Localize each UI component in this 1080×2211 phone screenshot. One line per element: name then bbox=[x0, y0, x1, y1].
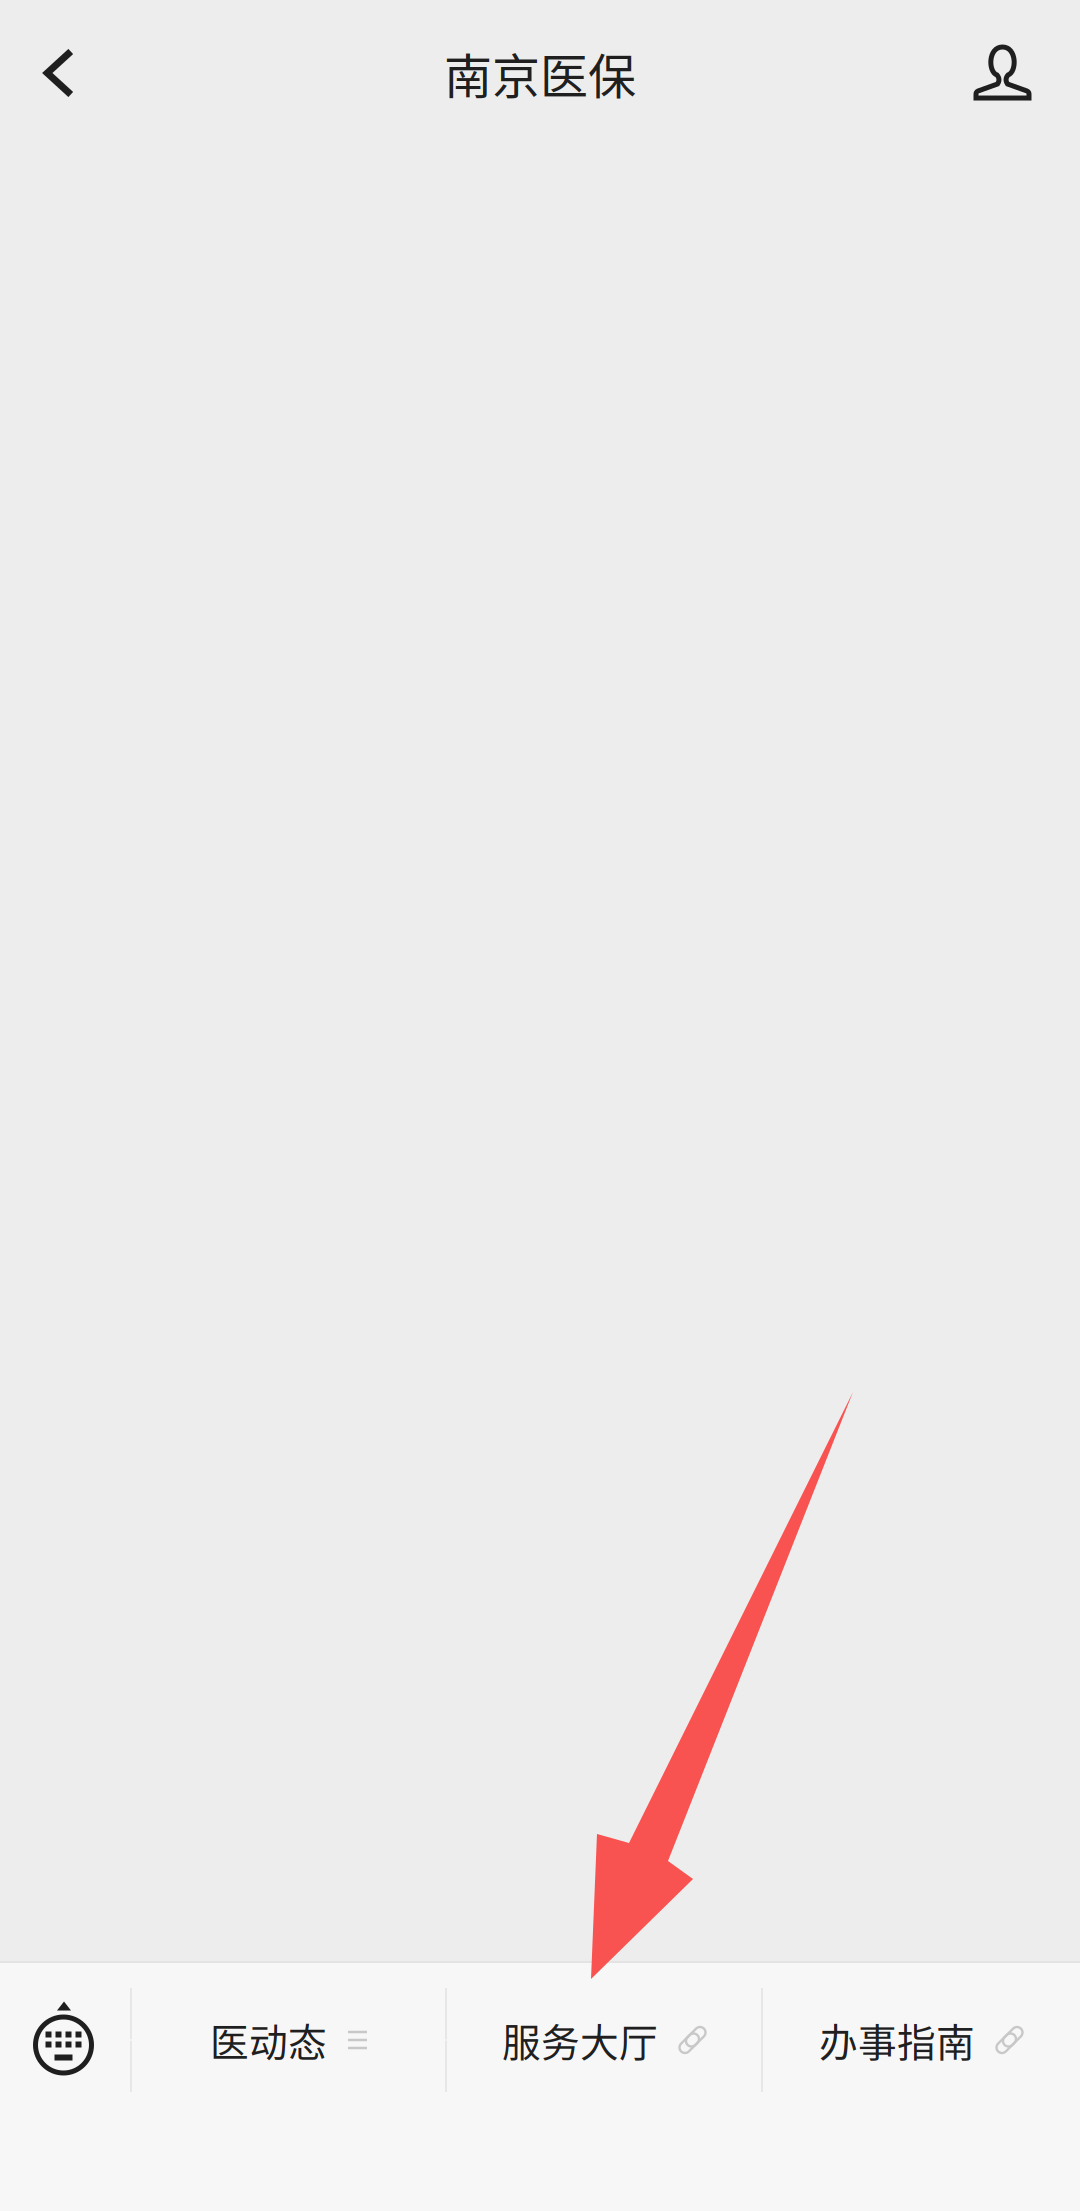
button[interactable]: Keyboard bbox=[0, 1963, 131, 2211]
staticText: 医动态 bbox=[210, 2012, 327, 2068]
staticText: 南京医保 bbox=[444, 38, 636, 108]
button[interactable]: 医动态 bbox=[131, 1963, 446, 2211]
button[interactable]: Back bbox=[0, 0, 118, 146]
staticText: 办事指南 bbox=[819, 2012, 975, 2068]
button[interactable]: Profile bbox=[925, 0, 1080, 146]
button[interactable]: 办事指南 bbox=[762, 1963, 1080, 2211]
staticText: 服务大厅 bbox=[502, 2012, 658, 2068]
button[interactable]: 服务大厅 bbox=[446, 1963, 762, 2211]
